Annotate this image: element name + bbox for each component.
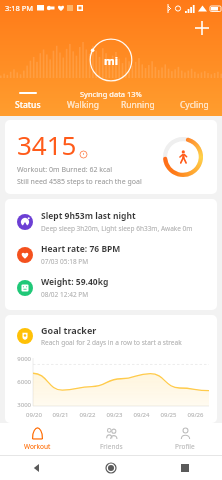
staticText: 3:18 PM — [5, 3, 34, 13]
staticText: 09/25 — [155, 411, 182, 419]
staticText: Weight: 59.40kg — [41, 276, 109, 288]
staticText: 09/20 — [21, 411, 47, 419]
staticText: Slept 9h53m last night — [41, 210, 136, 222]
staticText: 09/26 — [182, 411, 209, 419]
staticText: 3415 — [17, 127, 77, 162]
staticText: 09/21 — [47, 411, 74, 419]
button[interactable]: 3415 — [5, 120, 217, 194]
staticText: 9000 — [11, 355, 31, 363]
staticText: 09/22 — [74, 411, 101, 419]
staticText: Walking — [67, 99, 99, 111]
button[interactable]: Recent apps — [148, 456, 222, 480]
button[interactable]: Walking — [55, 91, 110, 112]
staticText: Cycling — [180, 99, 209, 111]
staticText: Status — [15, 99, 41, 111]
button[interactable]: Heart rate: 76 BPM — [5, 238, 217, 271]
staticText: 6000 — [11, 378, 31, 386]
button[interactable]: Home — [74, 456, 148, 480]
staticText: Still need 4585 steps to reach the goal — [17, 177, 142, 187]
staticText: Reach goal for 2 days in a row to start … — [41, 338, 182, 347]
staticText: Heart rate: 76 BPM — [41, 243, 121, 255]
staticText: Syncing data 13% — [80, 89, 142, 99]
button[interactable]: Back — [0, 456, 74, 480]
staticText: Friends — [100, 442, 123, 451]
button[interactable]: Status — [0, 91, 55, 112]
staticText: 07/03 05:18 PM — [41, 257, 89, 266]
button[interactable]: Slept 9h53m last night — [5, 205, 217, 238]
staticText: 09/23 — [101, 411, 128, 419]
staticText: Deep sleep 3h20m, Light sleep 6h33m, Awa… — [41, 224, 193, 233]
staticText: Workout: 0m Burned: 62 kcal — [17, 165, 113, 175]
button[interactable]: Goal tracker — [5, 315, 217, 423]
staticText: 08/02 12:42 PM — [41, 290, 89, 299]
button[interactable]: Running — [110, 91, 166, 112]
staticText: Profile — [175, 442, 195, 451]
staticText: Running — [121, 99, 155, 111]
button[interactable]: Add — [188, 14, 216, 42]
staticText: Workout — [24, 442, 51, 451]
button[interactable]: Workout — [0, 425, 74, 453]
button[interactable]: Weight: 59.40kg — [5, 271, 217, 304]
button[interactable]: Profile — [148, 425, 222, 453]
staticText: 3000 — [11, 401, 31, 409]
staticText: Goal tracker — [41, 324, 97, 336]
staticText: 09/24 — [128, 411, 155, 419]
button[interactable]: Cycling — [166, 91, 222, 112]
button[interactable]: Friends — [74, 425, 148, 453]
staticText: mi — [104, 53, 119, 68]
